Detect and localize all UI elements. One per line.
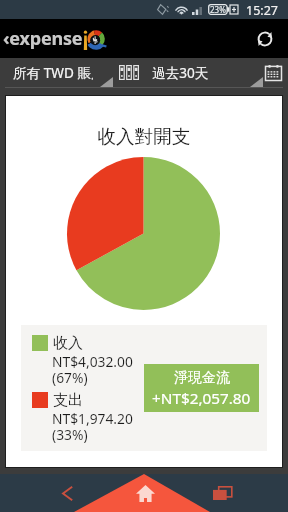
button[interactable]: Back (36, 474, 96, 512)
staticText: 收入 (53, 334, 83, 353)
staticText: 所有 TWD 賬戶 (13, 63, 93, 82)
button[interactable]: Home (114, 474, 174, 512)
staticText: (67%) (52, 368, 88, 387)
button[interactable]: Recent apps (193, 474, 253, 512)
staticText: NT$4,032.00 (52, 352, 133, 371)
staticText: ‹expense (3, 26, 83, 51)
staticText: 收入對開支 (6, 125, 282, 148)
staticText: 過去30天 (152, 63, 209, 82)
staticText: +NT$2,057.80 (152, 388, 251, 409)
button[interactable]: 過去30天 (142, 58, 261, 87)
button[interactable]: Select date (261, 58, 285, 87)
staticText: 15:27 (246, 2, 278, 19)
staticText: NT$1,974.20 (52, 409, 133, 428)
button[interactable]: Accounts (116, 58, 142, 87)
staticText: (33%) (52, 425, 88, 444)
button[interactable]: 所有 TWD 賬戶 (0, 58, 116, 87)
button[interactable]: 淨現金流 (144, 364, 259, 412)
staticText: 23% (210, 4, 226, 15)
button[interactable]: Refresh (245, 19, 284, 58)
staticText: 淨現金流 (174, 369, 230, 387)
staticText: 支出 (53, 391, 83, 410)
